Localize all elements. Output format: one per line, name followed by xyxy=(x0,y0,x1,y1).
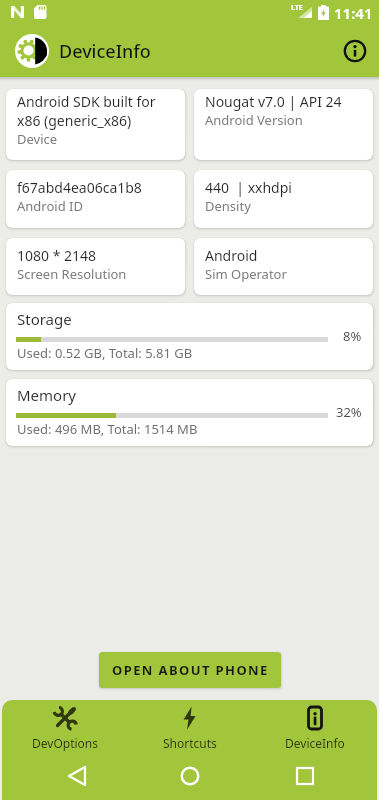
staticText: Memory xyxy=(17,385,77,405)
staticText: Android SDK built for x86 (generic_x86) xyxy=(17,92,156,130)
button[interactable] xyxy=(2,757,127,800)
staticText: Android xyxy=(205,246,258,265)
staticText: Android Version xyxy=(205,111,303,129)
staticText: Sim Operator xyxy=(205,265,287,283)
staticText: Storage xyxy=(17,309,72,329)
staticText: 32% xyxy=(336,403,362,421)
button[interactable]: Storage xyxy=(6,303,373,370)
button[interactable] xyxy=(127,757,252,800)
staticText: Shortcuts xyxy=(163,735,217,751)
staticText: DevOptions xyxy=(32,735,98,751)
staticText: Density xyxy=(205,197,251,215)
button[interactable]: DeviceInfo xyxy=(252,700,377,757)
staticText: Screen Resolution xyxy=(17,265,127,283)
staticText: f67abd4ea06ca1b8 xyxy=(17,178,142,197)
button[interactable]: 1080 * 2148 xyxy=(6,238,185,295)
staticText: Android ID xyxy=(17,197,83,215)
staticText: Nougat v7.0 | API 24 xyxy=(205,92,342,111)
button[interactable] xyxy=(335,31,375,71)
button[interactable]: OPEN ABOUT PHONE xyxy=(99,652,281,688)
staticText: DeviceInfo xyxy=(59,39,151,64)
button[interactable]: DevOptions xyxy=(2,700,127,757)
staticText: 8% xyxy=(343,327,362,345)
button[interactable]: Shortcuts xyxy=(127,700,252,757)
button[interactable]: Memory xyxy=(6,379,373,446)
staticText: Device xyxy=(17,130,58,148)
button[interactable]: Android xyxy=(194,238,373,295)
staticText: 440 | xxhdpi xyxy=(205,178,292,197)
staticText: OPEN ABOUT PHONE xyxy=(112,661,269,679)
staticText: Used: 496 MB, Total: 1514 MB xyxy=(17,420,198,438)
button[interactable]: Nougat v7.0 | API 24 xyxy=(194,89,373,160)
staticText: 1080 * 2148 xyxy=(17,246,97,265)
staticText: LTE xyxy=(291,3,303,13)
button[interactable]: f67abd4ea06ca1b8 xyxy=(6,170,185,228)
staticText: Used: 0.52 GB, Total: 5.81 GB xyxy=(17,344,193,362)
button[interactable]: 440 | xxhdpi xyxy=(194,170,373,228)
button[interactable]: Android SDK built for x86 (generic_x86) xyxy=(6,89,185,160)
staticText: DeviceInfo xyxy=(285,735,345,751)
staticText: 11:41 xyxy=(334,3,373,23)
button[interactable] xyxy=(252,757,377,800)
